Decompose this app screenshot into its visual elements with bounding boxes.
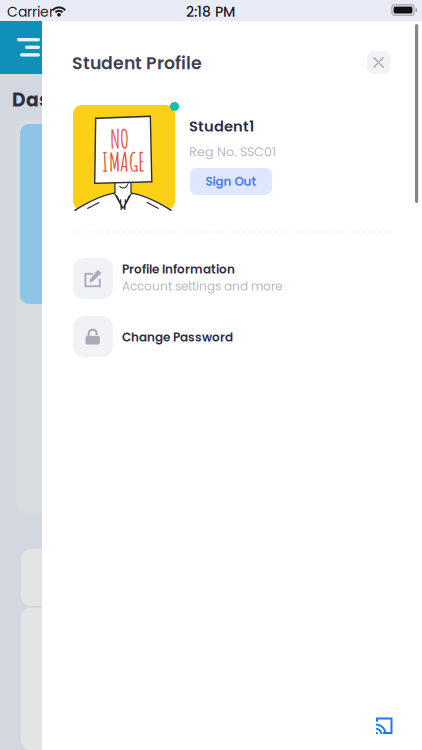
staticText: Das [12, 87, 49, 113]
staticText: Sign Out [205, 173, 256, 190]
button[interactable]: Sign Out [190, 168, 272, 195]
staticText: Account settings and more [122, 278, 282, 295]
button[interactable]: Cast to device [362, 709, 402, 743]
button[interactable]: Profile Information [42, 237, 422, 299]
staticText: IMAGE [102, 146, 145, 178]
staticText: Change Password [122, 329, 233, 346]
staticText: NO [110, 123, 129, 155]
staticText: Student Profile [72, 51, 202, 75]
staticText: Reg No. SSC01 [189, 143, 276, 161]
staticText: Carrier [7, 2, 54, 22]
staticText: Student1 [189, 116, 254, 136]
button[interactable]: Change Password [42, 299, 422, 359]
button[interactable]: Close [367, 51, 390, 74]
staticText: Profile Information [122, 261, 235, 278]
staticText: 2:18 PM [186, 2, 235, 22]
